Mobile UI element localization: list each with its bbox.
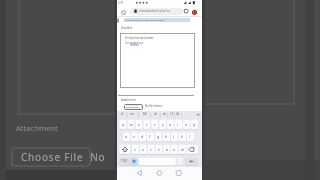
button[interactable] bbox=[184, 9, 188, 13]
staticText: 5:55 bbox=[118, 1, 124, 5]
staticText: . bbox=[180, 159, 181, 163]
staticText: t bbox=[154, 122, 156, 127]
button[interactable] bbox=[192, 10, 197, 15]
staticText: memoworkent.com/cu bbox=[139, 9, 170, 13]
button[interactable] bbox=[174, 169, 183, 178]
staticText: u bbox=[169, 122, 172, 127]
staticText: af bbox=[121, 112, 124, 116]
staticText: Hi skyrunnerbero team, bbox=[125, 36, 154, 40]
staticText: No file chosen bbox=[145, 104, 163, 108]
staticText: v bbox=[158, 147, 160, 152]
staticText: o bbox=[185, 122, 188, 127]
staticText: Deadline bbox=[121, 26, 133, 30]
button[interactable]: memoworkent.com/cu bbox=[130, 8, 183, 15]
staticText: i bbox=[177, 122, 178, 127]
staticText: Attachment bbox=[16, 123, 58, 133]
staticText: ab bbox=[163, 112, 167, 116]
staticText: all bbox=[154, 112, 157, 116]
staticText: I am english to verify me consider bbox=[125, 18, 165, 21]
staticText: d bbox=[141, 134, 144, 139]
staticText: n bbox=[173, 147, 176, 152]
staticText: h bbox=[165, 134, 168, 139]
staticText: p bbox=[193, 122, 196, 127]
staticText: U bbox=[170, 111, 173, 116]
staticText: Choose File bbox=[126, 106, 139, 109]
staticText: w bbox=[130, 122, 133, 127]
staticText: s bbox=[133, 134, 135, 139]
staticText: r bbox=[146, 122, 148, 127]
staticText: em bbox=[130, 112, 134, 116]
staticText: Choose File No bbox=[21, 150, 106, 164]
staticText: x bbox=[142, 147, 144, 152]
staticText: g bbox=[157, 134, 160, 139]
staticText: Attachment bbox=[121, 98, 136, 102]
staticText: f bbox=[149, 134, 151, 139]
staticText: I m hacked xyz bbox=[125, 41, 143, 45]
staticText: m bbox=[181, 147, 185, 152]
staticText: k bbox=[181, 134, 183, 139]
button[interactable] bbox=[117, 111, 202, 168]
staticText: e bbox=[138, 122, 140, 127]
staticText: z bbox=[134, 147, 136, 152]
staticText: q bbox=[122, 122, 125, 127]
staticText: ?123 bbox=[121, 159, 127, 163]
staticText: b bbox=[166, 147, 169, 152]
staticText: LA bbox=[176, 112, 180, 116]
button[interactable] bbox=[135, 169, 144, 178]
staticText: a bbox=[125, 134, 127, 139]
button[interactable]: Choose File bbox=[124, 104, 143, 110]
staticText: j bbox=[173, 134, 174, 139]
staticText: y bbox=[162, 122, 164, 127]
button[interactable]: Hi skyrunnerbero team, bbox=[120, 33, 195, 88]
staticText: l bbox=[189, 134, 190, 139]
staticText: AR bbox=[143, 112, 147, 116]
staticText: c bbox=[150, 147, 152, 152]
button[interactable] bbox=[155, 169, 164, 178]
